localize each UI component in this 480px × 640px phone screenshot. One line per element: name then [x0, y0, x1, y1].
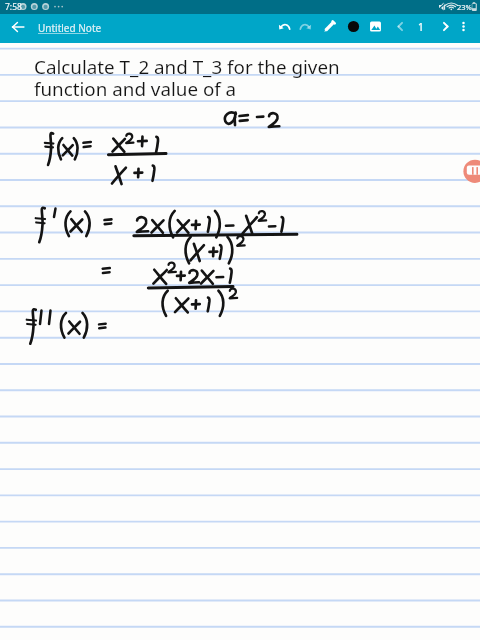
button[interactable]: Back [5, 14, 31, 39]
button[interactable]: Pen [318, 14, 340, 39]
staticText: 1 [418, 20, 424, 34]
staticText: 23% [457, 2, 472, 12]
button[interactable]: Previous page [389, 14, 411, 39]
button[interactable]: Next page [434, 14, 456, 39]
button[interactable]: Untitled Note [38, 21, 108, 37]
button[interactable]: Redo [294, 14, 316, 39]
button[interactable]: Undo [273, 14, 295, 39]
staticText: 7:58 [5, 1, 22, 13]
button[interactable]: Insert image [364, 14, 386, 39]
staticText: Calculate T_2 and T_3 for the given func… [34, 54, 340, 101]
staticText: Untitled Note [38, 21, 102, 35]
button[interactable]: 1 [411, 14, 431, 39]
button[interactable]: More options [452, 14, 474, 39]
button[interactable]: Pen colour [342, 14, 364, 39]
